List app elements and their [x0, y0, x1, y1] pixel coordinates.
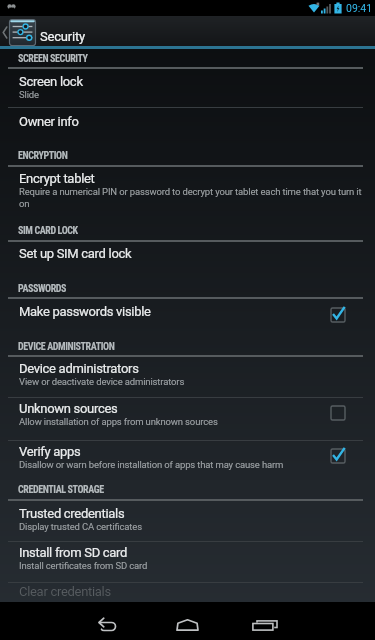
- staticText: Install from SD card: [19, 545, 128, 560]
- staticText: PASSWORDS: [18, 283, 67, 295]
- button[interactable]: Make passwords visible: [0, 299, 375, 337]
- button[interactable]: Device administrators: [0, 357, 375, 397]
- staticText: Encrypt tablet: [19, 171, 95, 186]
- staticText: Install certificates from SD card: [19, 560, 148, 571]
- staticText: Security: [40, 29, 85, 44]
- staticText: Display trusted CA certificates: [19, 521, 142, 532]
- button[interactable]: Install from SD card: [0, 542, 375, 582]
- button[interactable]: Screen lock: [0, 69, 375, 107]
- staticText: Verify apps: [19, 444, 81, 459]
- staticText: Allow installation of apps from unknown …: [19, 416, 218, 427]
- staticText: Owner info: [19, 114, 79, 129]
- staticText: 09:41: [346, 2, 373, 14]
- staticText: SCREEN SECURITY: [18, 53, 88, 65]
- staticText: View or deactivate device administrators: [19, 376, 185, 387]
- button[interactable]: Set up SIM card lock: [0, 242, 375, 280]
- button[interactable]: [0, 602, 125, 640]
- staticText: Require a numerical PIN or password to d…: [19, 186, 367, 209]
- staticText: Set up SIM card lock: [19, 246, 132, 261]
- button[interactable]: [250, 602, 375, 640]
- staticText: Trusted credentials: [19, 506, 125, 521]
- staticText: Device administrators: [19, 361, 139, 376]
- staticText: Disallow or warn before installation of …: [19, 459, 284, 470]
- button[interactable]: [9, 19, 36, 46]
- staticText: Make passwords visible: [19, 304, 151, 319]
- button[interactable]: Unknown sources: [0, 398, 375, 440]
- staticText: SIM CARD LOCK: [18, 225, 78, 237]
- button[interactable]: Owner info: [0, 108, 375, 145]
- staticText: DEVICE ADMINISTRATION: [18, 341, 115, 353]
- staticText: Screen lock: [19, 74, 83, 89]
- button[interactable]: [125, 602, 250, 640]
- staticText: Clear credentials: [19, 584, 111, 599]
- button[interactable]: Trusted credentials: [0, 501, 375, 541]
- staticText: ENCRYPTION: [18, 150, 68, 162]
- staticText: Unknown sources: [19, 401, 118, 416]
- button[interactable]: Encrypt tablet: [0, 167, 375, 219]
- staticText: Slide: [19, 89, 39, 100]
- button[interactable]: Clear credentials: [0, 583, 375, 602]
- staticText: CREDENTIAL STORAGE: [18, 484, 104, 496]
- button[interactable]: Verify apps: [0, 441, 375, 481]
